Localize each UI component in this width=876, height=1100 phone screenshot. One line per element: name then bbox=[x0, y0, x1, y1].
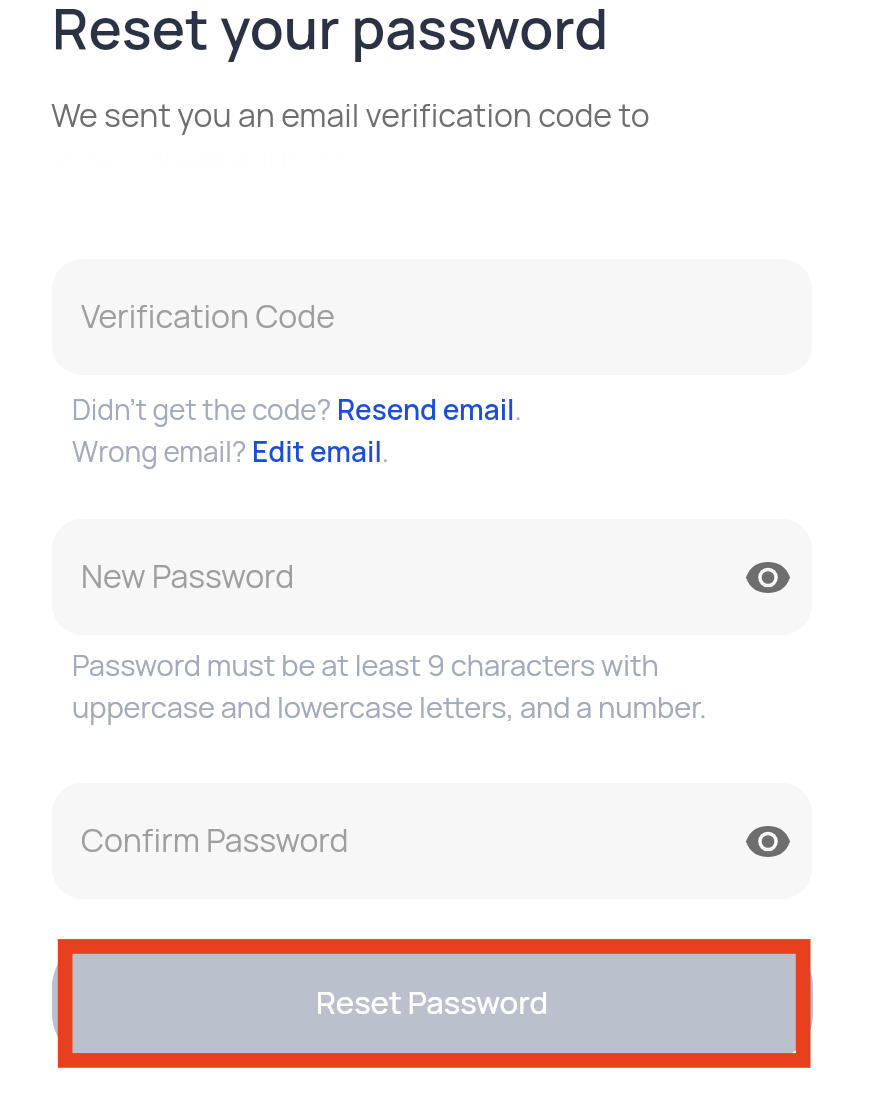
staticText: Confirm Password bbox=[81, 818, 349, 862]
staticText: Reset your password bbox=[52, 0, 609, 65]
staticText: Didn’t get the code? Resend email. Wrong… bbox=[72, 390, 522, 470]
button[interactable]: Confirm Password bbox=[52, 783, 812, 899]
button[interactable]: New Password bbox=[52, 519, 812, 635]
button[interactable]: Verification Code bbox=[52, 259, 812, 375]
staticText: Password must be at least 9 characters w… bbox=[72, 645, 707, 726]
staticText: Verification Code bbox=[81, 294, 335, 338]
staticText: Reset Password bbox=[316, 981, 549, 1023]
staticText: We sent you an email verification code t… bbox=[51, 93, 650, 137]
button[interactable]: Show password bbox=[740, 813, 796, 869]
staticText: New Password bbox=[81, 554, 295, 598]
button[interactable]: Show password bbox=[740, 549, 796, 605]
button[interactable]: Reset Password bbox=[52, 940, 813, 1061]
